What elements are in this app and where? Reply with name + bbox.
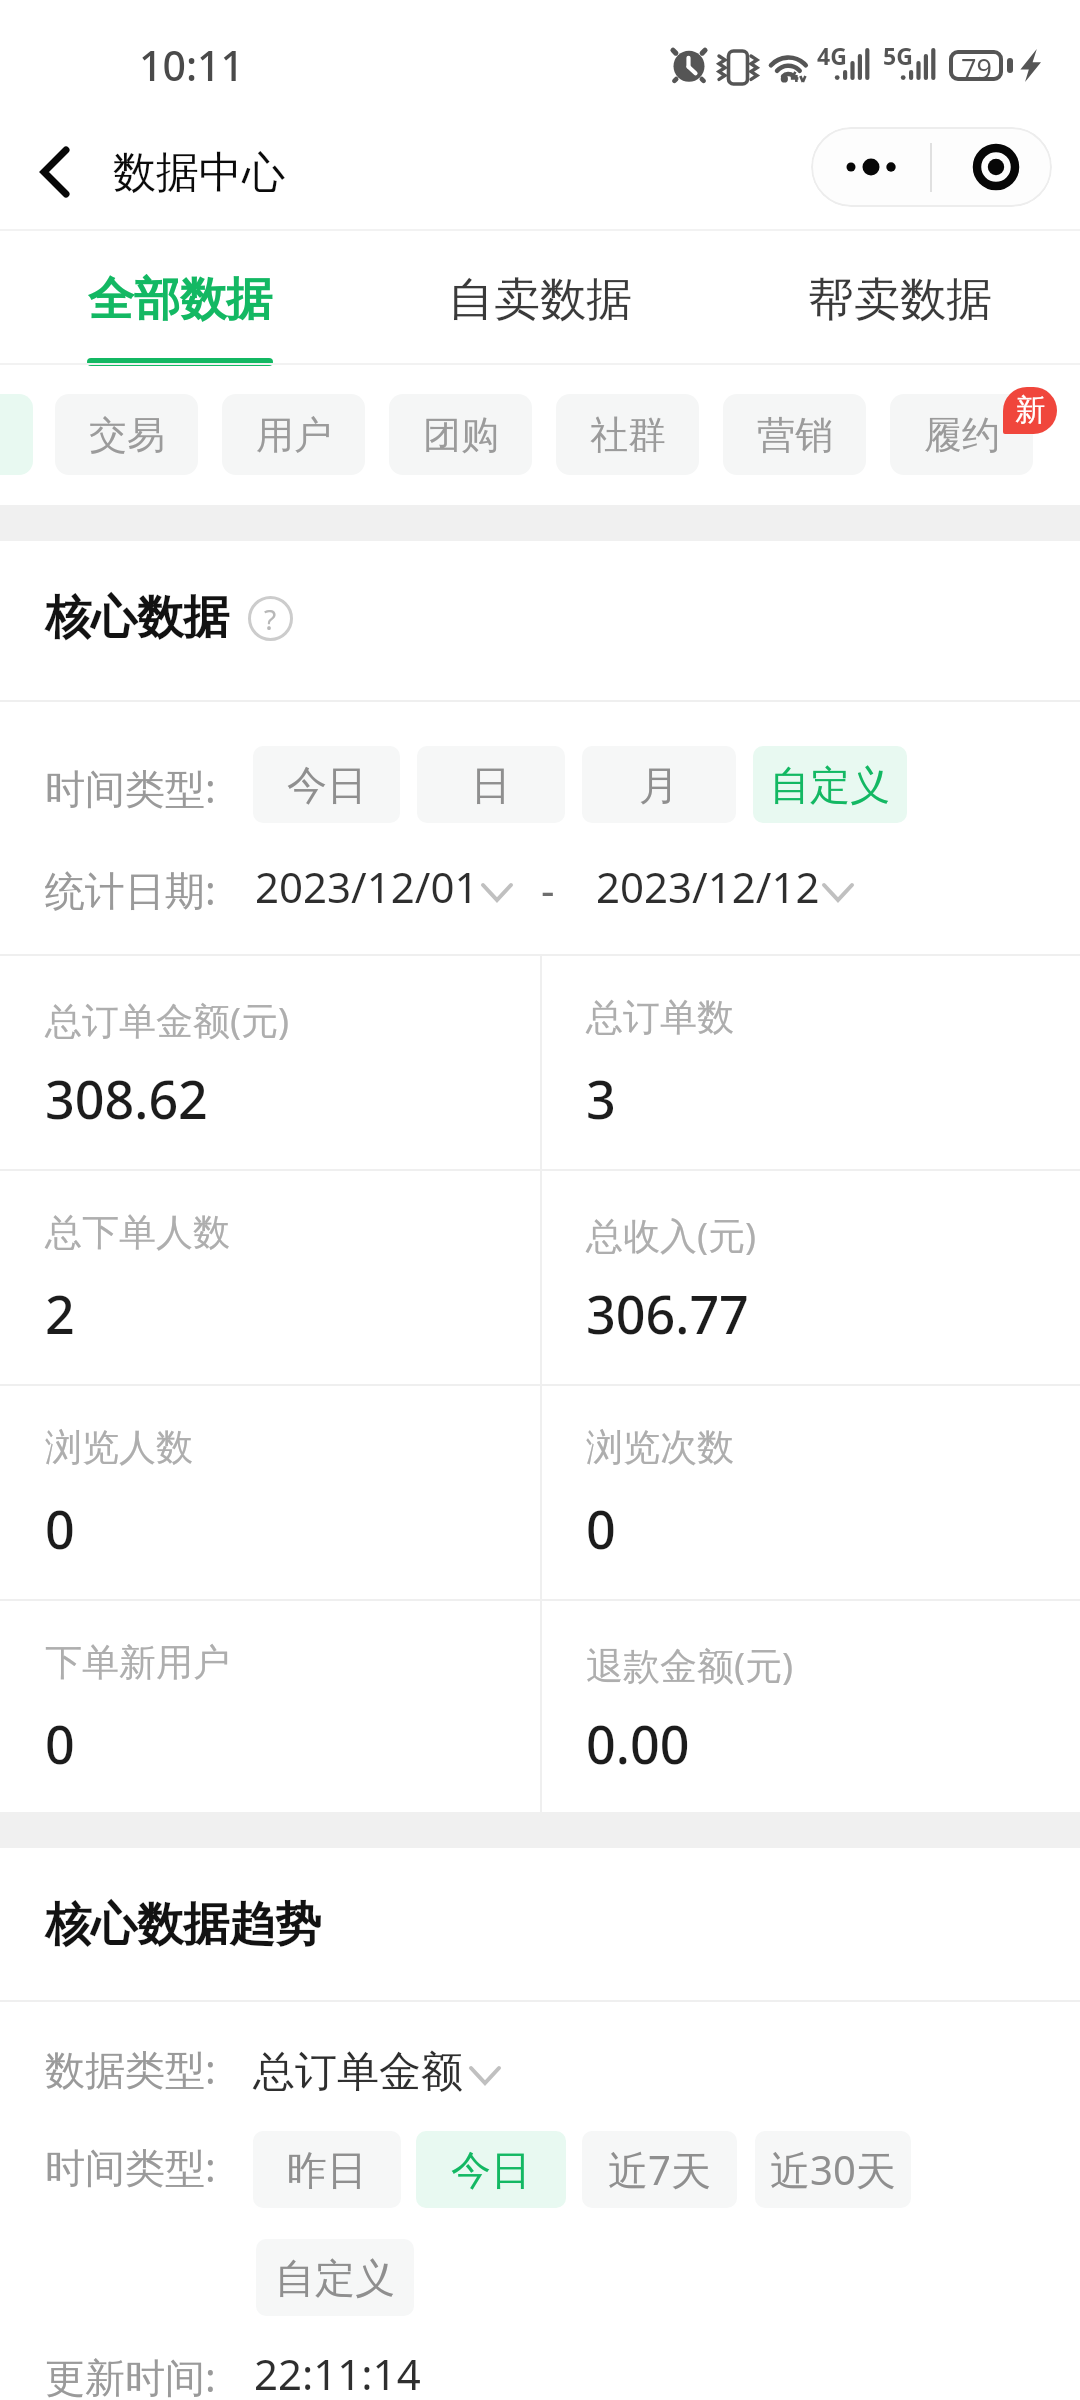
staticText: 近30天: [770, 2142, 896, 2197]
button[interactable]: 更多与关闭: [811, 127, 1052, 207]
button[interactable]: 日: [417, 746, 565, 823]
staticText: 22:11:14: [254, 2345, 421, 2400]
button[interactable]: 月: [582, 746, 736, 823]
staticText: 今日: [451, 2145, 531, 2195]
button[interactable]: 近7天: [582, 2131, 737, 2208]
staticText: 更新时间:: [45, 2349, 216, 2400]
staticText: ?: [264, 600, 277, 638]
staticText: 交易: [89, 411, 165, 459]
staticText: 2023/12/01: [255, 858, 479, 915]
button[interactable]: 返回: [17, 134, 93, 210]
button[interactable]: 全部数据: [0, 231, 360, 365]
button[interactable]: 总订单金额(元): [0, 955, 540, 1169]
button[interactable]: 2023/12/12: [596, 858, 854, 915]
staticText: 数据中心: [113, 146, 285, 200]
button[interactable]: 说明: [248, 596, 293, 641]
button[interactable]: 今日: [253, 746, 400, 823]
staticText: 308.62: [45, 1063, 208, 1134]
staticText: 0: [45, 1493, 75, 1564]
staticText: 总下单人数: [45, 1209, 230, 1256]
staticText: 统计日期:: [45, 862, 216, 917]
button[interactable]: 浏览人数: [0, 1385, 540, 1599]
staticText: 0.00: [586, 1708, 690, 1779]
button[interactable]: 昨日: [253, 2131, 401, 2208]
staticText: 核心数据趋势: [45, 1896, 321, 1954]
staticText: 浏览次数: [586, 1424, 734, 1471]
staticText: 79: [961, 50, 992, 81]
staticText: 社群: [590, 411, 666, 459]
button[interactable]: 自定义: [256, 2239, 414, 2316]
staticText: 3: [586, 1063, 616, 1134]
staticText: 10:11: [139, 37, 244, 93]
staticText: 帮卖数据: [808, 271, 992, 329]
staticText: 0: [586, 1493, 616, 1564]
staticText: 团购: [423, 411, 499, 459]
staticText: 自定义: [275, 2253, 395, 2303]
staticText: 总订单金额: [253, 2046, 463, 2099]
staticText: 浏览人数: [45, 1424, 193, 1471]
staticText: 0: [45, 1708, 75, 1779]
staticText: 下单新用户: [45, 1639, 230, 1686]
staticText: 时间类型:: [45, 760, 216, 815]
staticText: 近7天: [608, 2142, 711, 2197]
button[interactable]: 总下单人数: [0, 1170, 540, 1384]
staticText: 退款金额(元): [586, 1639, 794, 1690]
button[interactable]: 帮卖数据: [720, 231, 1080, 365]
button[interactable]: 总订单金额: [253, 2046, 501, 2099]
staticText: 总订单数: [586, 994, 734, 1041]
staticText: 自定义: [770, 760, 890, 810]
staticText: 日: [471, 760, 511, 810]
button[interactable]: 自卖数据: [360, 231, 720, 365]
staticText: 4G: [817, 40, 847, 71]
button[interactable]: 近30天: [755, 2131, 911, 2208]
staticText: 今日: [287, 760, 367, 810]
staticText: 5G: [883, 40, 913, 71]
staticText: 全部数据: [88, 271, 272, 329]
button[interactable]: 社群: [556, 394, 699, 475]
button[interactable]: 退款金额(元): [541, 1600, 1080, 1814]
staticText: 月: [639, 760, 679, 810]
staticText: 用户: [256, 411, 332, 459]
button[interactable]: 2023/12/01: [255, 858, 513, 915]
button[interactable]: 自定义: [753, 746, 907, 823]
button[interactable]: 总收入(元): [541, 1170, 1080, 1384]
button[interactable]: 团购: [389, 394, 532, 475]
staticText: 2: [45, 1278, 75, 1349]
staticText: 营销: [757, 411, 833, 459]
staticText: 2023/12/12: [596, 858, 820, 915]
button[interactable]: 营销: [723, 394, 866, 475]
button[interactable]: 用户: [222, 394, 365, 475]
staticText: -: [541, 861, 555, 918]
button[interactable]: 浏览次数: [541, 1385, 1080, 1599]
staticText: 数据类型:: [45, 2041, 216, 2096]
button[interactable]: 总订单数: [541, 955, 1080, 1169]
staticText: 核心数据: [45, 589, 229, 647]
button[interactable]: 履约: [890, 394, 1033, 475]
staticText: 时间类型:: [45, 2139, 216, 2194]
button[interactable]: 今日: [416, 2131, 566, 2208]
staticText: 总订单金额(元): [45, 994, 290, 1045]
staticText: 306.77: [586, 1278, 749, 1349]
staticText: 自卖数据: [448, 271, 632, 329]
staticText: 新: [1015, 391, 1045, 429]
button[interactable]: 下单新用户: [0, 1600, 540, 1814]
staticText: 总收入(元): [586, 1209, 757, 1260]
staticText: 昨日: [287, 2145, 367, 2195]
button[interactable]: 交易: [55, 394, 198, 475]
staticText: 履约: [924, 411, 1000, 459]
button[interactable]: 概览: [0, 394, 33, 475]
